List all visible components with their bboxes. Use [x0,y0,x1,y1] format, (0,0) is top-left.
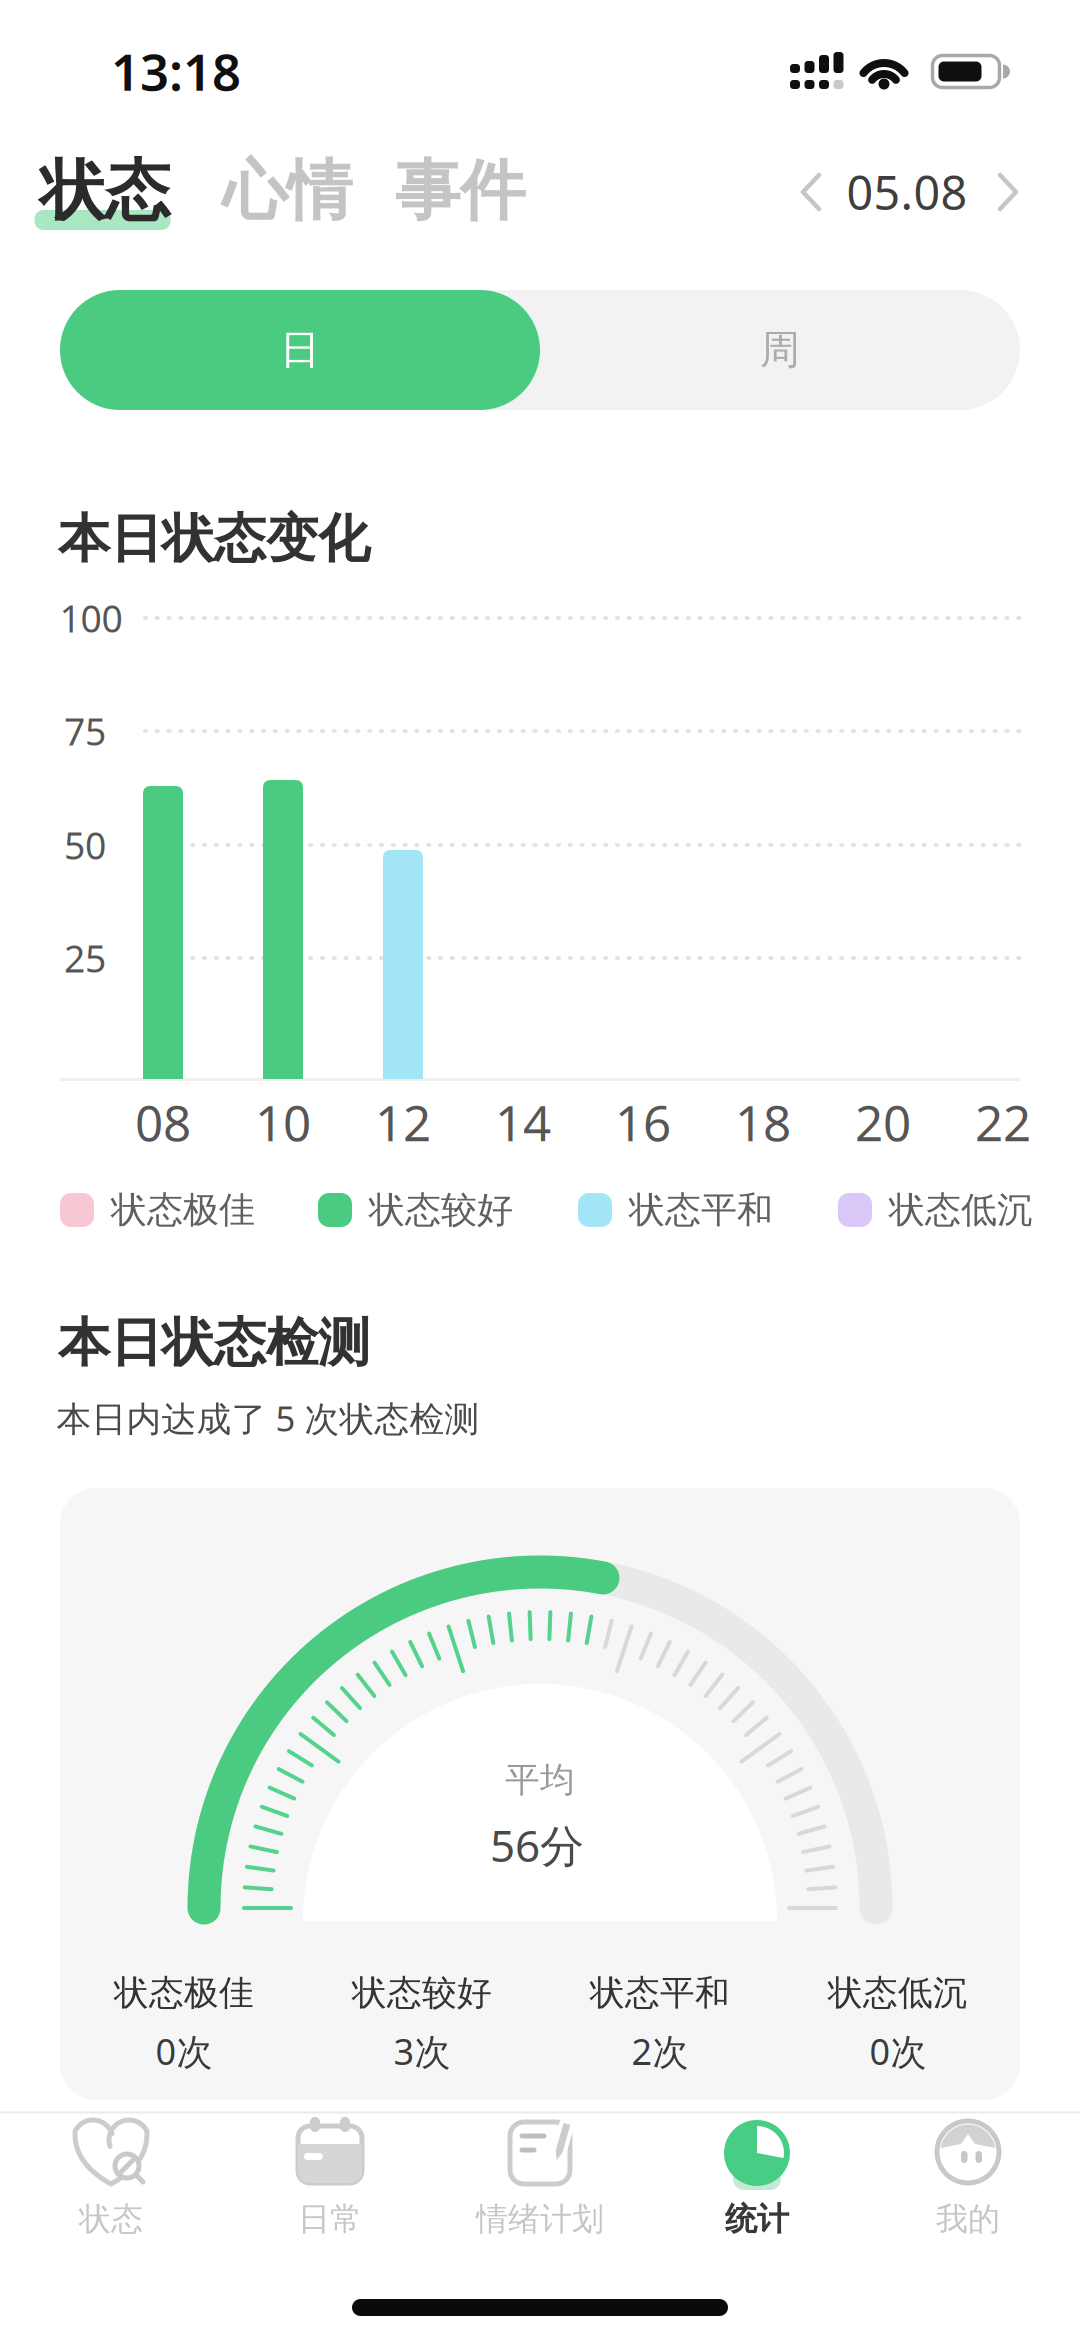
staticText: 2次 [631,2027,688,2075]
button[interactable]: 事件 [380,146,540,236]
staticText: 08 [135,1089,191,1155]
staticText: 状态平和 [629,1188,773,1232]
staticText: 状态较好 [352,1972,492,2014]
staticText: 05.08 [846,161,967,223]
staticText: 情绪计划 [476,2199,604,2239]
staticText: 周 [760,325,800,374]
staticText: 本日内达成了 5 次状态检测 [56,1395,479,1441]
staticText: 状态低沉 [889,1188,1033,1232]
staticText: 14 [495,1089,551,1155]
staticText: 75 [64,706,106,756]
button[interactable]: 情绪计划 [440,2118,640,2246]
staticText: 状态较好 [369,1188,513,1232]
staticText: 20 [855,1089,911,1155]
staticText: 状态 [40,151,170,231]
button[interactable] [781,157,841,227]
staticText: 状态极佳 [114,1972,254,2014]
staticText: 0次 [155,2027,212,2075]
staticText: 18 [735,1089,791,1155]
staticText: 13:18 [111,37,241,105]
button[interactable]: 统计 [657,2118,857,2246]
button[interactable]: 我的 [868,2118,1068,2246]
staticText: 50 [64,820,106,870]
staticText: 事件 [395,151,525,231]
staticText: 10 [255,1089,311,1155]
staticText: 100 [59,593,122,643]
staticText: 3次 [393,2027,450,2075]
staticText: 16 [615,1089,671,1155]
staticText: 22 [975,1089,1031,1155]
button[interactable]: 周 [540,290,1020,410]
staticText: 0次 [869,2027,926,2075]
button[interactable]: 状态 [11,2118,211,2246]
button[interactable]: 日 [60,290,540,410]
staticText: 状态 [79,2199,143,2239]
button[interactable] [978,157,1038,227]
staticText: 状态低沉 [828,1972,968,2014]
staticText: 本日状态变化 [58,507,370,571]
staticText: 本日状态检测 [58,1311,370,1375]
staticText: 平均 [505,1759,575,1801]
button[interactable]: 状态 [25,152,185,242]
staticText: 日 [280,325,320,374]
staticText: 56分 [490,1816,584,1874]
button[interactable]: 心情 [207,146,367,236]
staticText: 25 [64,933,106,983]
staticText: 我的 [936,2199,1000,2239]
staticText: 状态极佳 [111,1188,255,1232]
button[interactable]: 日常 [230,2118,430,2246]
staticText: 12 [375,1089,431,1155]
staticText: 心情 [222,151,352,231]
staticText: 日常 [298,2199,362,2239]
staticText: 状态平和 [590,1972,730,2014]
staticText: 统计 [725,2199,789,2239]
